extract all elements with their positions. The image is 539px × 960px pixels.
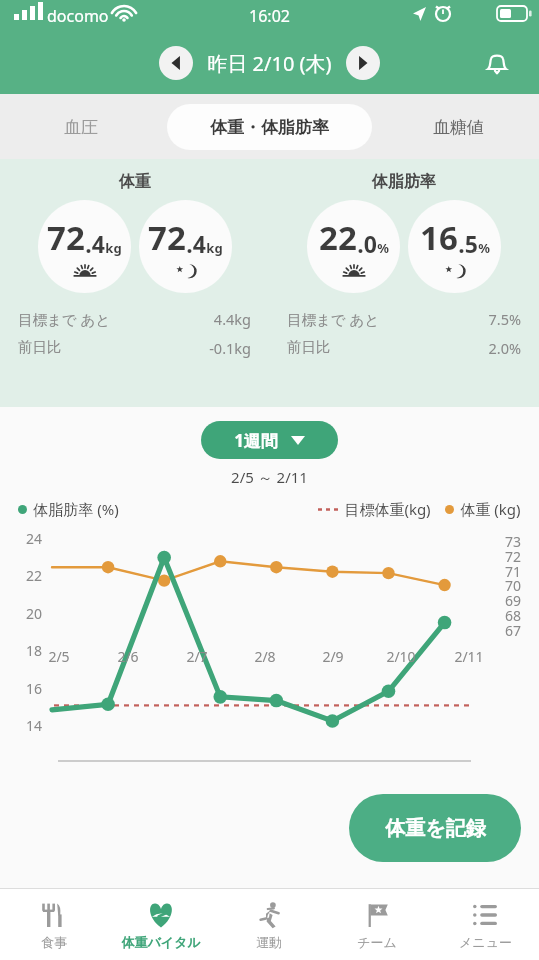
staticText: 体重を記録 [385, 816, 486, 841]
staticText: 71 [504, 562, 521, 581]
staticText: 73 [504, 532, 521, 551]
staticText: .4 [186, 228, 206, 259]
staticText: 前日比 [287, 338, 331, 356]
staticText: docomo [47, 5, 109, 27]
staticText: 14 [26, 716, 43, 735]
staticText: 目標体重(kg) [344, 499, 431, 519]
staticText: 体脂肪率 (%) [33, 499, 119, 519]
staticText: 2/8 [254, 647, 276, 666]
staticText: 72 [47, 215, 85, 260]
staticText: 食事 [41, 934, 67, 950]
button[interactable]: 22 [307, 200, 400, 293]
staticText: .5 [458, 228, 478, 259]
staticText: 24 [26, 529, 43, 548]
button[interactable]: 72 [139, 200, 232, 293]
staticText: 1週間 [234, 429, 278, 452]
staticText: .4 [85, 228, 105, 259]
button[interactable]: 運動 [215, 900, 323, 950]
staticText: 69 [504, 591, 521, 610]
button[interactable]: 血糖値 [378, 104, 539, 150]
staticText: 体脂肪率 [372, 172, 436, 192]
button[interactable]: 食事 [0, 900, 107, 950]
button[interactable]: 1週間 [201, 421, 338, 459]
staticText: % [478, 239, 490, 257]
staticText: 目標まで あと [18, 309, 111, 329]
staticText: 7.5% [488, 309, 521, 329]
button[interactable]: 16 [408, 200, 501, 293]
button[interactable]: チーム [323, 900, 431, 950]
button[interactable]: 体重を記録 [349, 794, 521, 862]
staticText: 72 [148, 215, 186, 260]
staticText: 2/6 [117, 647, 139, 666]
staticText: 体重バイタル [121, 934, 201, 950]
staticText: 2/5 ～ 2/11 [0, 467, 539, 487]
staticText: 体重・体脂肪率 [210, 117, 329, 138]
staticText: 2.0% [488, 338, 521, 358]
staticText: 16 [26, 679, 43, 698]
staticText: 22 [319, 215, 357, 260]
staticText: 目標まで あと [287, 309, 380, 329]
staticText: 4.4kg [213, 309, 251, 329]
staticText: 運動 [256, 934, 282, 950]
staticText: 2/5 [48, 647, 70, 666]
button[interactable]: Next day [346, 46, 380, 80]
staticText: % [377, 239, 389, 257]
staticText: 68 [504, 606, 521, 625]
button[interactable]: Notifications [477, 43, 517, 83]
staticText: 72 [504, 547, 521, 566]
staticText: 20 [26, 604, 43, 623]
button[interactable]: Previous day [159, 46, 193, 80]
staticText: 体重 (kg) [460, 499, 521, 519]
staticText: 2/7 [186, 647, 208, 666]
staticText: 体重 [119, 172, 151, 192]
staticText: 22 [26, 566, 43, 585]
staticText: 昨日 2/10 (木) [207, 50, 332, 77]
staticText: 2/9 [322, 647, 344, 666]
button[interactable]: メニュー [431, 900, 539, 950]
staticText: 70 [504, 576, 521, 595]
staticText: -0.1kg [209, 338, 251, 358]
staticText: 16 [420, 215, 458, 260]
button[interactable]: 血圧 [0, 104, 161, 150]
button[interactable]: 体重・体脂肪率 [167, 104, 372, 150]
staticText: kg [206, 239, 223, 257]
staticText: 2/10 [386, 647, 416, 666]
staticText: 前日比 [18, 338, 62, 356]
staticText: .0 [357, 228, 377, 259]
staticText: 血糖値 [433, 117, 484, 138]
button[interactable]: 体重バイタル [107, 900, 215, 950]
staticText: 16:02 [249, 5, 290, 27]
staticText: 血圧 [64, 117, 98, 138]
button[interactable]: 72 [38, 200, 131, 293]
staticText: 18 [26, 641, 43, 660]
staticText: 67 [504, 621, 521, 640]
staticText: kg [105, 239, 122, 257]
staticText: メニュー [459, 934, 512, 950]
staticText: 2/11 [454, 647, 484, 666]
staticText: チーム [357, 934, 397, 950]
